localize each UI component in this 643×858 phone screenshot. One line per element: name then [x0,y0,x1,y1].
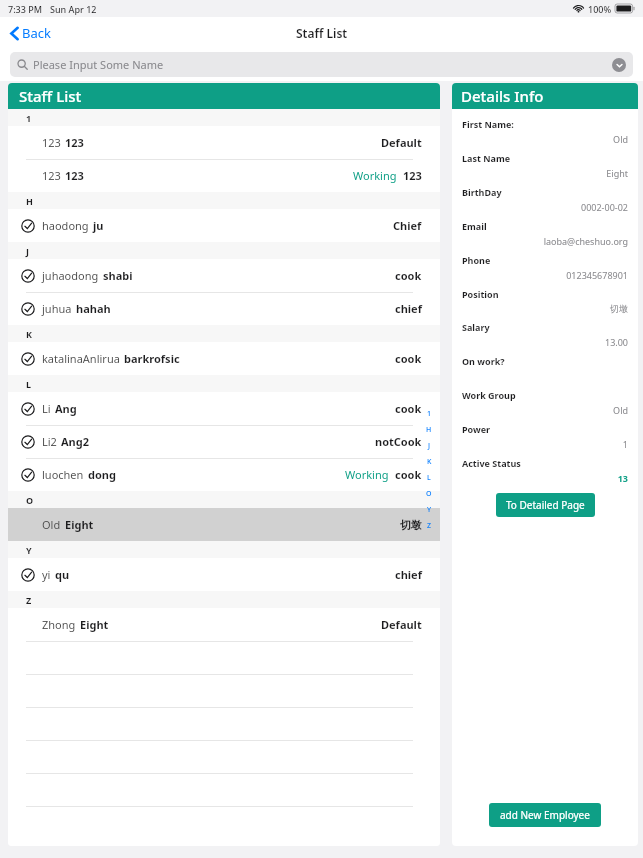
staticText: 1 [427,409,432,419]
staticText: Ang2 [61,434,90,449]
staticText: Working [345,467,389,482]
staticText: Li [42,401,51,416]
staticText: Working [353,168,397,183]
staticText: 012345678901 [462,269,628,281]
button[interactable]: add New Employee [489,803,601,827]
button[interactable]: katalinaAnlirua [8,342,440,375]
staticText: L [26,378,32,390]
staticText: haodong [42,218,89,233]
staticText: yi [42,567,51,582]
staticText: notCook [375,434,422,449]
button[interactable]: juhaodong [8,259,440,292]
staticText: Please Input Some Name [33,57,164,72]
staticText: Last Name [462,152,511,164]
staticText: Chief [393,218,422,233]
staticText: cook [395,467,422,482]
staticText: 0002-00-02 [462,201,628,213]
button[interactable]: O [422,486,436,502]
staticText: laoba@cheshuo.org [462,235,628,247]
staticText: Ang [55,401,77,416]
staticText: qu [55,567,70,582]
button[interactable]: Please Input Some Name [10,52,633,77]
staticText: BirthDay [462,186,502,198]
button[interactable]: luochen [8,458,440,491]
button[interactable]: Li [8,392,440,425]
staticText: 13.00 [462,336,628,348]
staticText: katalinaAnlirua [42,351,120,366]
button[interactable]: To Detailed Page [496,493,595,517]
button[interactable]: 1 [422,406,436,422]
staticText: Eight [65,517,94,532]
staticText: Default [381,135,422,150]
staticText: Power [462,423,491,435]
staticText: juhua [42,301,72,316]
staticText: K [427,457,432,467]
staticText: Eight [462,167,628,179]
button[interactable]: Y [422,502,436,518]
button[interactable]: 123 [8,159,440,192]
staticText: ju [93,218,104,233]
button[interactable]: J [422,438,436,454]
staticText: Eight [80,617,109,632]
button[interactable]: Details Info [452,83,638,109]
staticText: Y [26,544,32,556]
button[interactable]: Clear search [612,58,626,72]
staticText: O [426,489,432,499]
staticText: Work Group [462,389,516,401]
button[interactable]: yi [8,558,440,591]
button[interactable]: L [422,470,436,486]
button[interactable]: Zhong [8,608,440,641]
staticText: Default [381,617,422,632]
staticText: juhaodong [42,268,99,283]
staticText: Li2 [42,434,57,449]
staticText: Staff List [19,86,82,106]
staticText: chief [395,567,422,582]
button[interactable]: Old [8,508,440,541]
staticText: chief [395,301,422,316]
button[interactable]: Back [7,21,54,45]
button[interactable]: K [422,454,436,470]
staticText: 1 [462,438,628,450]
button[interactable]: 123 [8,126,440,159]
staticText: Position [462,288,499,300]
staticText: Back [22,24,51,42]
staticText: J [26,245,29,257]
staticText: 7:33 PM [8,3,42,15]
staticText: 123 [65,168,84,183]
staticText: Sun Apr 12 [50,3,97,15]
staticText: cook [395,351,422,366]
staticText: Phone [462,254,491,266]
button[interactable]: juhua [8,292,440,325]
staticText: Y [427,505,432,515]
button[interactable]: Z [422,518,436,534]
staticText: H [426,425,432,435]
staticText: hahah [76,301,111,316]
staticText: Zhong [42,617,76,632]
staticText: 100% [588,3,612,15]
staticText: 1 [26,112,32,124]
staticText: 13 [462,472,628,484]
staticText: K [26,328,32,340]
staticText: First Name: [462,118,514,130]
staticText: 123 [65,135,84,150]
staticText: Staff List [296,25,348,41]
staticText: shabi [103,268,133,283]
staticText: barkrofsic [124,351,180,366]
button[interactable]: Staff List [8,83,440,109]
staticText: 123 [42,135,61,150]
staticText: Z [26,594,32,606]
staticText: Active Status [462,457,521,469]
staticText: H [26,195,33,207]
staticText: luochen [42,467,84,482]
staticText: Old [462,133,628,145]
button[interactable]: H [422,422,436,438]
staticText: Old [42,517,61,532]
staticText: cook [395,268,422,283]
staticText: Salary [462,321,490,333]
button[interactable]: Li2 [8,425,440,458]
button[interactable]: haodong [8,209,440,242]
staticText: L [427,473,431,483]
staticText: Old [462,404,628,416]
staticText: To Detailed Page [506,498,585,512]
staticText: cook [395,401,422,416]
